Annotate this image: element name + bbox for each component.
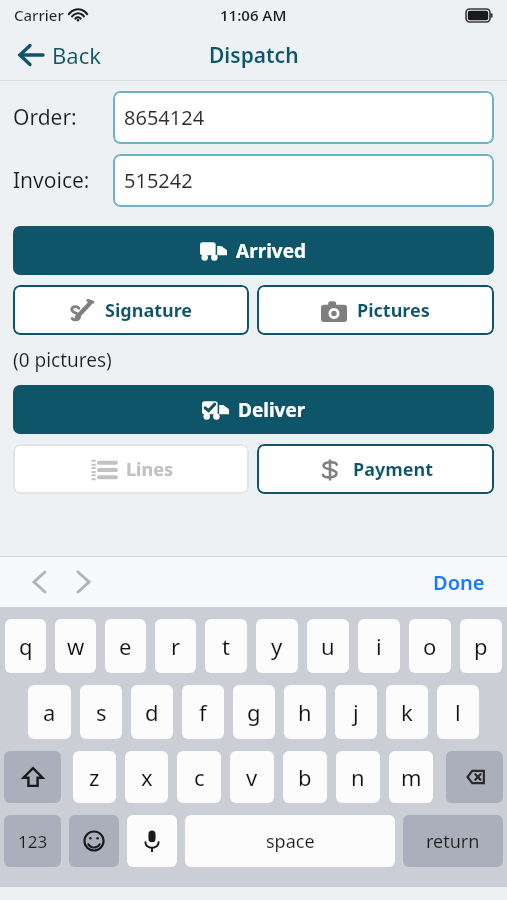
staticText: Order: (13, 103, 77, 132)
button[interactable]: return (403, 815, 503, 867)
staticText: c (194, 762, 205, 792)
button[interactable]: s (80, 685, 122, 739)
staticText: Pictures (357, 298, 430, 323)
staticText: o (423, 631, 437, 661)
staticText: x (141, 762, 153, 792)
button[interactable]: Next field (66, 563, 100, 601)
staticText: 8654124 (124, 104, 205, 131)
button[interactable]: Deliver (13, 385, 494, 434)
button[interactable]: space (185, 815, 395, 867)
staticText: Done (433, 569, 485, 596)
staticText: Back (52, 40, 101, 70)
staticText: space (266, 829, 315, 854)
button[interactable]: Pictures (257, 285, 494, 335)
button[interactable]: j (335, 685, 377, 739)
button[interactable]: q (5, 619, 46, 673)
button[interactable]: e (105, 619, 146, 673)
staticText: d (145, 697, 159, 727)
staticText: Lines (126, 457, 173, 482)
staticText: e (119, 631, 132, 661)
staticText: z (89, 762, 100, 792)
button[interactable]: 123 (4, 815, 61, 867)
staticText: 123 (18, 830, 48, 853)
button[interactable]: o (409, 619, 451, 673)
staticText: r (171, 631, 181, 661)
staticText: b (298, 762, 312, 792)
button[interactable]: d (131, 685, 173, 739)
button[interactable]: 515242 (113, 154, 494, 207)
staticText: Signature (105, 298, 193, 323)
staticText: 11:06 AM (220, 5, 287, 25)
staticText: p (474, 631, 488, 661)
staticText: w (67, 631, 85, 661)
staticText: Deliver (238, 397, 306, 423)
button[interactable]: g (233, 685, 275, 739)
staticText: v (246, 762, 258, 792)
staticText: Dispatch (209, 41, 299, 70)
staticText: k (401, 697, 413, 727)
staticText: y (271, 631, 283, 661)
button[interactable]: Emoji (69, 815, 119, 867)
staticText: i (376, 631, 382, 661)
button[interactable]: Done (411, 561, 507, 604)
button[interactable]: b (283, 751, 327, 803)
button[interactable]: y (256, 619, 298, 673)
button[interactable]: Shift (4, 751, 61, 803)
staticText: l (455, 697, 461, 727)
staticText: u (321, 631, 335, 661)
staticText: Invoice: (13, 166, 90, 195)
staticText: (0 pictures) (13, 347, 112, 373)
button[interactable]: c (177, 751, 221, 803)
button[interactable]: m (389, 751, 433, 803)
staticText: j (353, 697, 359, 727)
button[interactable]: Payment (257, 444, 494, 494)
button[interactable]: a (28, 685, 71, 739)
staticText: Carrier (14, 5, 64, 25)
button[interactable]: n (336, 751, 380, 803)
staticText: s (96, 697, 107, 727)
button[interactable]: p (460, 619, 502, 673)
button[interactable]: l (437, 685, 479, 739)
staticText: g (247, 697, 261, 727)
button[interactable]: 8654124 (113, 91, 494, 144)
button[interactable]: h (284, 685, 326, 739)
button[interactable]: r (155, 619, 196, 673)
button[interactable]: z (73, 751, 116, 803)
button[interactable]: t (205, 619, 247, 673)
button[interactable]: x (125, 751, 168, 803)
button[interactable]: Signature (13, 285, 249, 335)
button[interactable]: w (55, 619, 96, 673)
staticText: t (222, 631, 230, 661)
staticText: Arrived (236, 238, 307, 264)
staticText: 515242 (124, 167, 193, 194)
staticText: a (43, 697, 56, 727)
staticText: h (298, 697, 312, 727)
button[interactable]: Arrived (13, 226, 494, 275)
button[interactable]: Backspace (446, 751, 503, 803)
button[interactable]: k (386, 685, 428, 739)
button[interactable]: Lines (13, 444, 249, 494)
button[interactable]: f (182, 685, 224, 739)
staticText: Payment (353, 457, 434, 482)
staticText: f (199, 697, 207, 727)
staticText: q (19, 631, 33, 661)
button[interactable]: Previous field (22, 563, 56, 601)
button[interactable]: i (358, 619, 400, 673)
button[interactable]: Dictation (127, 815, 177, 867)
staticText: m (401, 762, 422, 792)
button[interactable]: v (230, 751, 274, 803)
button[interactable]: Back (0, 34, 111, 76)
staticText: n (351, 762, 365, 792)
staticText: return (426, 829, 480, 854)
button[interactable]: u (307, 619, 349, 673)
